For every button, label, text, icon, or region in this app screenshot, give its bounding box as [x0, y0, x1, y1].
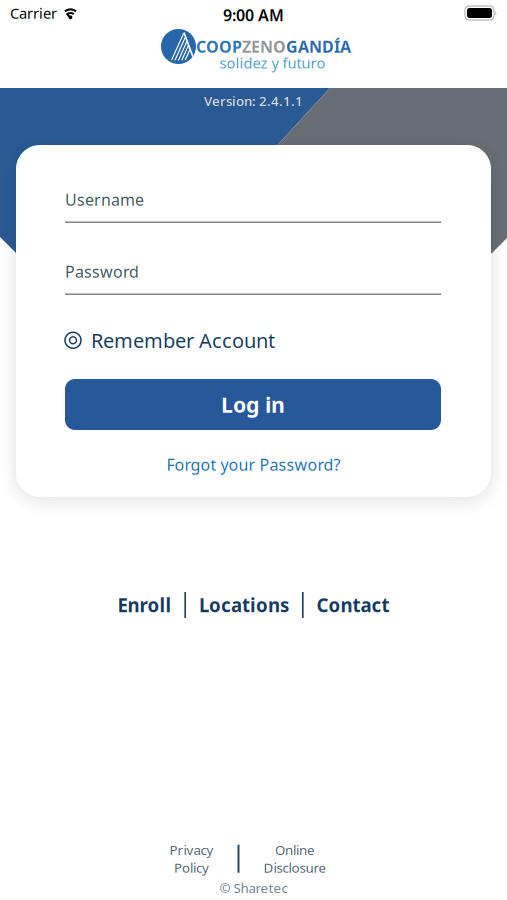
- staticText: Password: [65, 261, 139, 282]
- button[interactable]: Username: [65, 189, 441, 223]
- staticText: Locations: [199, 593, 289, 617]
- button[interactable]: Enroll: [117, 593, 171, 617]
- staticText: COOP: [196, 36, 242, 57]
- staticText: Forgot your Password?: [166, 454, 340, 475]
- staticText: Version: 2.4.1.1: [204, 92, 303, 110]
- button[interactable]: Log in: [65, 379, 441, 430]
- staticText: Contact: [317, 593, 390, 617]
- staticText: Enroll: [117, 593, 171, 617]
- button[interactable]: Forgot your Password?: [166, 454, 340, 475]
- staticText: Carrier: [10, 3, 57, 23]
- staticText: Log in: [221, 390, 285, 419]
- staticText: solidez y futuro: [219, 53, 325, 72]
- staticText: Privacy: [169, 841, 213, 859]
- staticText: 9:00 AM: [223, 4, 284, 26]
- staticText: Policy: [174, 859, 209, 876]
- button[interactable]: Remember Account: [64, 327, 275, 354]
- button[interactable]: Online: [263, 841, 326, 876]
- button[interactable]: Contact: [317, 593, 390, 617]
- staticText: GANDÍA: [286, 36, 351, 57]
- button[interactable]: Privacy: [169, 841, 213, 876]
- button[interactable]: Locations: [199, 593, 289, 617]
- staticText: © Sharetec: [219, 879, 287, 897]
- button[interactable]: Password: [65, 261, 441, 295]
- staticText: Disclosure: [263, 859, 326, 876]
- staticText: ZENO: [242, 36, 286, 57]
- staticText: Online: [275, 841, 315, 859]
- staticText: Username: [65, 189, 144, 210]
- staticText: Remember Account: [91, 327, 275, 354]
